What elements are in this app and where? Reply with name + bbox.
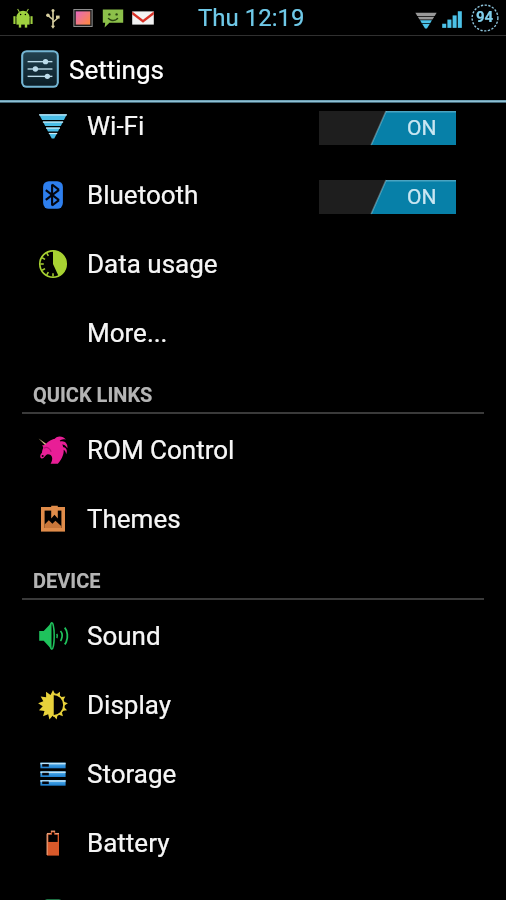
button[interactable]: Battery xyxy=(0,808,506,877)
button[interactable]: Sound xyxy=(0,601,506,670)
staticText: Storage xyxy=(87,759,177,789)
staticText: More... xyxy=(87,318,168,348)
staticText: Bluetooth xyxy=(87,180,199,210)
button[interactable]: Toggle on xyxy=(319,180,456,214)
button[interactable]: Wi-Fi xyxy=(0,91,506,160)
staticText: Display xyxy=(87,690,171,720)
staticText: Battery xyxy=(87,828,170,858)
staticText: ON xyxy=(407,185,437,210)
staticText: Thu 12:19 xyxy=(198,4,305,32)
staticText: Sound xyxy=(87,621,161,651)
staticText: 94 xyxy=(476,8,494,26)
button[interactable]: ROM Control xyxy=(0,415,506,484)
button[interactable]: Bluetooth xyxy=(0,160,506,229)
button[interactable]: Display xyxy=(0,670,506,739)
button[interactable]: More... xyxy=(0,298,506,367)
staticText: Data usage xyxy=(87,249,218,279)
staticText: Wi-Fi xyxy=(87,111,145,141)
staticText: DEVICE xyxy=(33,569,101,592)
staticText: ROM Control xyxy=(87,435,235,465)
staticText: Settings xyxy=(69,55,164,85)
button[interactable]: Data usage xyxy=(0,229,506,298)
staticText: QUICK LINKS xyxy=(33,383,153,406)
button[interactable]: Apps xyxy=(0,877,506,900)
staticText: ON xyxy=(407,116,437,141)
button[interactable]: Settings xyxy=(0,47,164,93)
button[interactable]: Themes xyxy=(0,484,506,553)
button[interactable]: Toggle on xyxy=(319,111,456,145)
staticText: Themes xyxy=(87,504,181,534)
button[interactable]: Storage xyxy=(0,739,506,808)
